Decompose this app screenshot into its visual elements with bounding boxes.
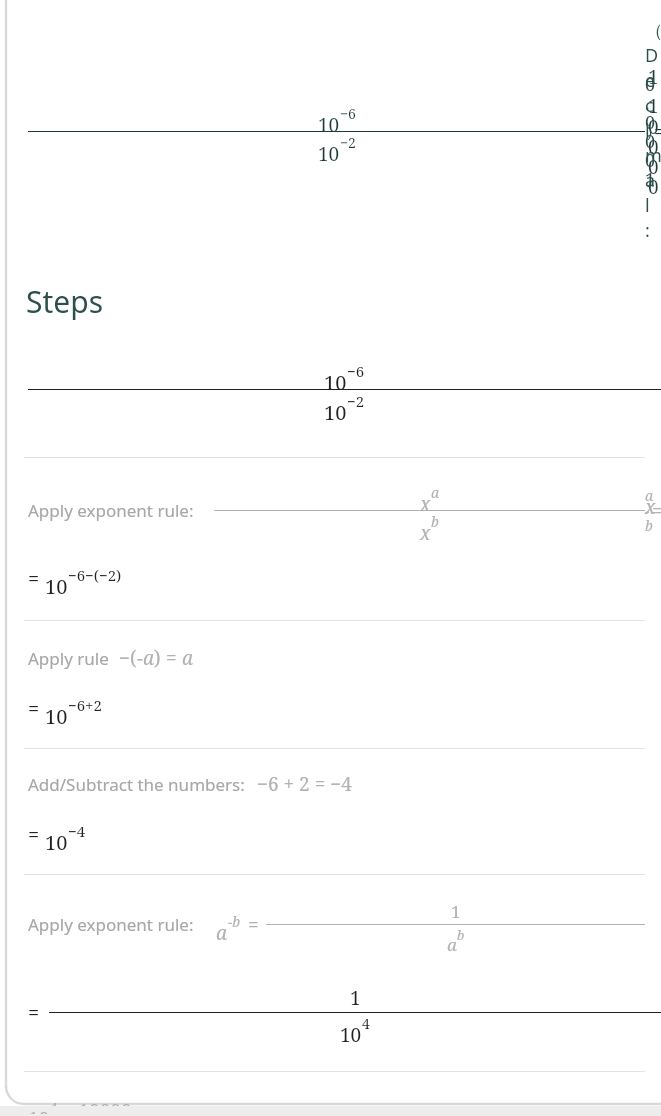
staticText: 10 bbox=[45, 703, 68, 730]
staticText: 4 bbox=[362, 1014, 370, 1033]
staticText: = bbox=[28, 821, 45, 848]
staticText: x bbox=[420, 520, 431, 546]
staticText: Steps bbox=[26, 281, 104, 322]
staticText: −2 bbox=[347, 391, 365, 411]
staticText: 1 bbox=[451, 900, 461, 923]
staticText: −6+2 bbox=[68, 695, 102, 715]
button[interactable]: Apply rule bbox=[0, 645, 661, 671]
staticText: = 10000 bbox=[58, 1098, 132, 1106]
staticText: 4 bbox=[50, 1098, 58, 1106]
staticText: a bbox=[447, 933, 457, 956]
staticText: x bbox=[420, 491, 431, 517]
button[interactable]: 10 bbox=[0, 20, 661, 243]
staticText: −6 bbox=[347, 361, 365, 381]
staticText: ) bbox=[154, 645, 161, 671]
staticText: −b bbox=[228, 912, 241, 931]
staticText: 10 bbox=[324, 369, 347, 396]
staticText: −6 + 2 = −4 bbox=[257, 771, 352, 797]
staticText: Apply exponent rule: bbox=[28, 913, 194, 936]
staticText: −2 bbox=[340, 133, 356, 152]
staticText: 10 bbox=[340, 1022, 362, 1048]
staticText: 10 bbox=[45, 829, 68, 856]
button[interactable]: Apply exponent rule: bbox=[0, 899, 661, 950]
staticText: = bbox=[28, 565, 45, 592]
button[interactable]: Add/Subtract the numbers: bbox=[0, 771, 661, 797]
staticText: a bbox=[182, 645, 194, 671]
staticText: −6 bbox=[340, 104, 356, 123]
staticText: Add/Subtract the numbers: bbox=[28, 773, 245, 796]
staticText: a bbox=[216, 920, 228, 946]
staticText: 10 bbox=[318, 141, 340, 167]
staticText: b bbox=[431, 512, 439, 531]
staticText: 10 bbox=[28, 1106, 50, 1114]
staticText: −6−(−2) bbox=[68, 565, 122, 585]
staticText: a bbox=[431, 483, 440, 502]
staticText: = bbox=[243, 912, 264, 938]
staticText: −4 bbox=[68, 821, 86, 841]
staticText: Apply rule bbox=[28, 647, 109, 670]
staticText: = bbox=[28, 695, 45, 722]
staticText: Apply exponent rule: bbox=[28, 499, 194, 522]
staticText: b bbox=[457, 926, 465, 944]
staticText: = bbox=[28, 999, 45, 1026]
staticText: 10 bbox=[324, 399, 347, 426]
staticText: −a bbox=[137, 645, 154, 671]
button[interactable]: Apply exponent rule: bbox=[0, 482, 661, 539]
staticText: 10 bbox=[45, 573, 68, 600]
staticText: 1 bbox=[350, 985, 361, 1011]
staticText: = bbox=[161, 645, 182, 671]
staticText: −( bbox=[119, 645, 137, 671]
staticText: 10 bbox=[318, 112, 340, 138]
